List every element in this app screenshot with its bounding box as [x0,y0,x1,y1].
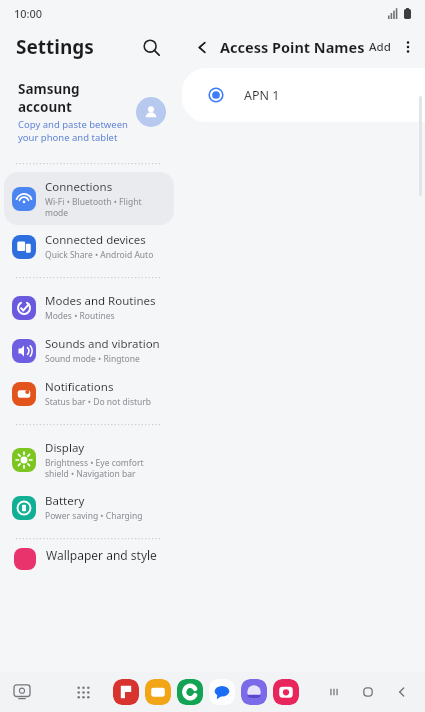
staticText: Status bar • Do not disturb [45,396,152,408]
button[interactable]: Search [134,30,168,64]
staticText: Wallpaper and style [46,547,157,563]
button[interactable]: Back [188,33,216,61]
button[interactable]: Notifications [4,372,174,415]
button[interactable]: Add [365,35,395,59]
button[interactable]: Recent apps panel [8,678,36,706]
button[interactable]: Recent apps [317,677,351,707]
button[interactable]: Wallpaper and style [0,547,178,569]
button[interactable]: App 3 [177,679,203,705]
staticText: Wi-Fi • Bluetooth • Flight mode [45,196,166,218]
button[interactable]: Samsung [0,76,178,154]
staticText: Connections [45,179,113,195]
staticText: account [18,98,72,116]
staticText: 10:00 [14,6,43,21]
button[interactable]: Connected devices [4,225,174,268]
staticText: APN 1 [244,87,280,104]
button[interactable]: More options [399,34,417,60]
staticText: Display [45,440,85,456]
button[interactable]: App 1 [113,679,139,705]
staticText: Brightness • Eye comfort shield • Naviga… [45,457,166,479]
staticText: Power saving • Charging [45,510,143,522]
staticText: Modes • Routines [45,310,115,322]
button[interactable]: Connections [4,172,174,225]
staticText: Settings [16,34,94,60]
staticText: Add [369,39,391,55]
staticText: Notifications [45,379,114,395]
button[interactable]: Sounds and vibration [4,329,174,372]
staticText: Samsung [18,80,80,98]
staticText: Access Point Names [220,37,365,57]
button[interactable]: App 5 [241,679,267,705]
button[interactable]: Modes and Routines [4,286,174,329]
button[interactable]: Battery [4,486,174,529]
button[interactable]: App 6 [273,679,299,705]
staticText: Battery [45,493,85,509]
button[interactable]: App 4 [209,679,235,705]
button[interactable]: Home [351,677,385,707]
button[interactable]: App 2 [145,679,171,705]
staticText: Quick Share • Android Auto [45,249,154,261]
staticText: Modes and Routines [45,293,156,309]
staticText: Sound mode • Ringtone [45,353,140,365]
button[interactable]: Back [385,677,419,707]
staticText: Copy and paste between your phone and ta… [18,118,130,144]
staticText: Connected devices [45,232,146,248]
staticText: Sounds and vibration [45,336,160,352]
button[interactable]: Display [4,433,174,486]
button[interactable]: APN 1 [182,68,425,122]
button[interactable]: Apps [70,679,96,705]
